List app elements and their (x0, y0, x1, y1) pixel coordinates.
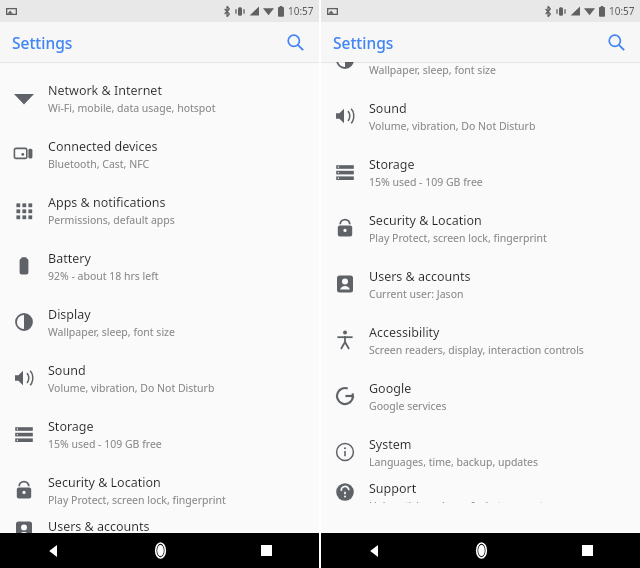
button[interactable]: Sound (0, 350, 319, 406)
staticText: 15% used - 109 GB free (369, 175, 483, 189)
button[interactable]: Security & Location (321, 200, 640, 256)
staticText: Storage (369, 156, 415, 173)
staticText: Storage (48, 418, 94, 435)
button[interactable]: Home (107, 533, 213, 568)
button[interactable]: Storage (0, 406, 319, 462)
button[interactable]: Battery (0, 238, 319, 294)
staticText: Accessibility (369, 324, 440, 341)
staticText: Apps & notifications (48, 194, 166, 211)
staticText: Security & Location (369, 212, 482, 229)
staticText: Bluetooth, Cast, NFC (48, 157, 150, 171)
button[interactable]: System (321, 424, 640, 480)
staticText: System (369, 436, 412, 453)
button[interactable]: Network & Internet (0, 70, 319, 126)
staticText: Help articles, phone & chat support (369, 499, 544, 503)
button[interactable]: Accessibility (321, 312, 640, 368)
staticText: 10:57 (288, 4, 314, 18)
staticText: Wallpaper, sleep, font size (48, 325, 175, 339)
staticText: 10:57 (609, 4, 635, 18)
staticText: Connected devices (48, 138, 158, 155)
staticText: Google (369, 380, 412, 397)
staticText: Permissions, default apps (48, 213, 175, 227)
button[interactable]: Recent apps (213, 533, 319, 568)
staticText: Wi-Fi, mobile, data usage, hotspot (48, 101, 216, 115)
staticText: Screen readers, display, interaction con… (369, 343, 584, 357)
button[interactable]: Search (600, 26, 632, 58)
staticText: Sound (48, 362, 86, 379)
button[interactable]: Connected devices (0, 126, 319, 182)
staticText: Languages, time, backup, updates (369, 455, 538, 469)
staticText: 92% - about 18 hrs left (48, 269, 159, 283)
staticText: Support (369, 480, 417, 497)
button[interactable]: Recent apps (534, 533, 640, 568)
staticText: Network & Internet (48, 82, 162, 99)
staticText: Settings (333, 32, 394, 53)
button[interactable]: Storage (321, 144, 640, 200)
staticText: Users & accounts (369, 268, 471, 285)
button[interactable]: Search (279, 26, 311, 58)
staticText: Battery (48, 250, 91, 267)
staticText: Play Protect, screen lock, fingerprint (369, 231, 547, 245)
staticText: Volume, vibration, Do Not Disturb (369, 119, 536, 133)
button[interactable]: Users & accounts (321, 256, 640, 312)
button[interactable]: Back (321, 533, 428, 568)
staticText: Current user: Jason (369, 287, 464, 301)
staticText: Security & Location (48, 474, 161, 491)
staticText: Wallpaper, sleep, font size (369, 63, 496, 77)
staticText: Settings (12, 32, 73, 53)
staticText: Sound (369, 100, 407, 117)
button[interactable]: Home (428, 533, 534, 568)
button[interactable]: Display (0, 294, 319, 350)
staticText: Users & accounts (48, 518, 150, 533)
staticText: Display (48, 306, 91, 323)
button[interactable]: Google (321, 368, 640, 424)
staticText: Volume, vibration, Do Not Disturb (48, 381, 215, 395)
button[interactable]: Users & accounts (0, 518, 319, 533)
staticText: Play Protect, screen lock, fingerprint (48, 493, 226, 507)
button[interactable]: Back (0, 533, 107, 568)
button[interactable]: Security & Location (0, 462, 319, 518)
button[interactable]: Support (321, 480, 640, 503)
button[interactable]: Display (321, 62, 640, 88)
button[interactable]: Apps & notifications (0, 182, 319, 238)
button[interactable]: Sound (321, 88, 640, 144)
staticText: 15% used - 109 GB free (48, 437, 162, 451)
staticText: Google services (369, 399, 447, 413)
